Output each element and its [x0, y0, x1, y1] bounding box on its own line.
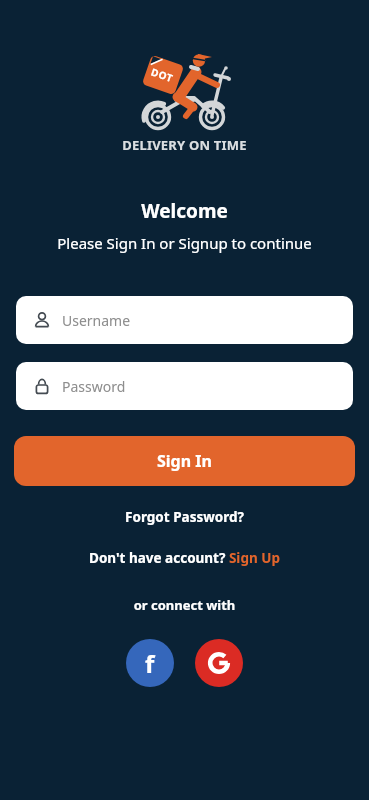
staticText: Sign In	[157, 450, 212, 472]
button[interactable]: Forgot Password?	[0, 508, 369, 526]
staticText: DELIVERY ON TIME	[0, 136, 369, 154]
button[interactable]: Sign In	[14, 436, 355, 486]
staticText: Welcome	[0, 198, 369, 224]
staticText: f	[145, 647, 155, 680]
button[interactable]: Username	[16, 296, 353, 344]
button[interactable]: Password	[16, 362, 353, 410]
button[interactable]: Don't have account? Sign Up	[0, 549, 369, 567]
button[interactable]: f	[126, 639, 174, 687]
staticText: Username	[62, 311, 131, 330]
staticText: or connect with	[0, 596, 369, 614]
staticText: Password	[62, 377, 126, 396]
staticText: Please Sign In or Signup to continue	[0, 233, 369, 253]
staticText: DOT	[149, 65, 176, 85]
button[interactable]	[195, 639, 243, 687]
